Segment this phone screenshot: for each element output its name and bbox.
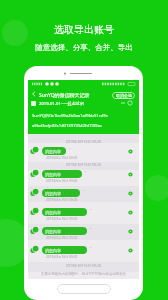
button[interactable]: 取消全选	[112, 92, 135, 99]
staticText: ···	[68, 146, 71, 151]
button[interactable]: 消息内容	[42, 227, 87, 235]
staticText: 2019年8月16日 09:20	[46, 217, 78, 221]
other: Back	[31, 91, 37, 97]
staticText: 2019年8月16日 09:20	[28, 162, 139, 167]
staticText: 2019年8月16日 09:20	[46, 156, 78, 160]
staticText: 取消全选	[116, 93, 132, 98]
staticText: 消息内容	[45, 149, 61, 154]
staticText: 2019年8月16日 09:20	[28, 139, 139, 144]
button[interactable]: 消息内容	[42, 170, 82, 178]
other: Selected	[128, 210, 133, 215]
staticText: 随意选择、分享、合并、导出	[0, 43, 168, 52]
staticText: 消息内容	[45, 191, 61, 196]
staticText: SunYQ的微信聊天记录	[39, 92, 90, 99]
staticText: ···	[82, 188, 85, 193]
staticText: 2019年8月16日 09:20	[46, 255, 78, 259]
staticText: 2019年8月16日 09:20	[46, 198, 78, 202]
staticText: 主要记录聊天内容和图片，部分???????的内容会出现丢失	[30, 271, 137, 276]
staticText: 消息内容	[45, 172, 61, 177]
staticText: 消息内容	[45, 248, 61, 253]
staticText: ···	[89, 245, 92, 250]
other: Selected	[128, 191, 133, 196]
staticText: 2019-01-01~一起走过的	[39, 101, 85, 106]
staticText: 消息内容	[45, 229, 61, 234]
other: Selected	[128, 229, 133, 234]
staticText: 2019年8月16日 09:20	[46, 236, 78, 240]
staticText: ···	[89, 226, 92, 231]
button[interactable]: 消息内容	[42, 246, 87, 254]
other: Selected	[128, 172, 133, 177]
staticText: a9bd3cdjc83c14013973542fd73f3ac	[32, 123, 103, 129]
staticText: ···	[89, 207, 92, 212]
staticText: ···	[84, 169, 87, 174]
button[interactable]: 消息内容	[42, 189, 80, 197]
staticText: 消息内容	[45, 210, 61, 215]
staticText: 选取导出账号	[0, 23, 168, 36]
button[interactable]	[57, 284, 111, 294]
other: Selected	[128, 149, 133, 154]
other: Selected	[128, 248, 133, 253]
staticText: 2019年8月16日 09:20	[28, 263, 139, 268]
button[interactable]: 消息内容	[42, 208, 87, 216]
button[interactable]: 消息内容	[42, 147, 66, 155]
staticText: 2019年8月16日 09:20	[46, 179, 78, 183]
staticText: SunYQ的0a1bc09a2b0aa1af9bb51cd9c	[32, 113, 108, 119]
